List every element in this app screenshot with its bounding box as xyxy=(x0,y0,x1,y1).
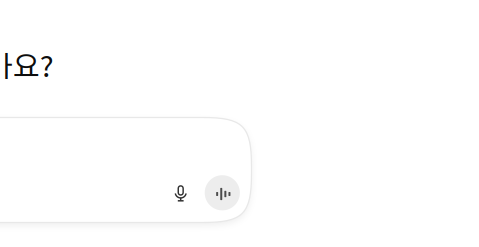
button[interactable]: Message xyxy=(0,117,251,222)
button[interactable]: Dictate xyxy=(164,177,198,211)
staticText: 가요? xyxy=(0,43,54,85)
button[interactable]: Voice mode xyxy=(205,175,240,210)
